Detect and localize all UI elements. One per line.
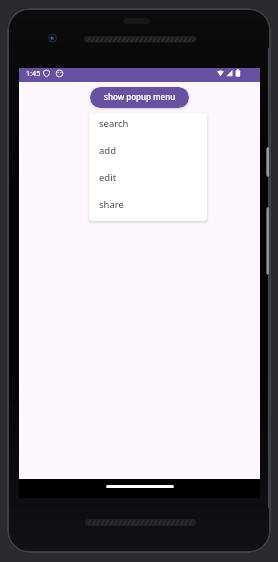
staticText: search (99, 117, 129, 130)
staticText: share (99, 198, 124, 211)
staticText: add (99, 144, 117, 157)
staticText: edit (99, 171, 117, 184)
button[interactable]: search (89, 113, 207, 140)
staticText: show popup menu (104, 91, 176, 102)
button[interactable]: share (89, 194, 207, 221)
button[interactable]: show popup menu (90, 87, 189, 108)
staticText: 1:45 (26, 68, 41, 78)
button[interactable]: edit (89, 167, 207, 194)
button[interactable]: add (89, 140, 207, 167)
